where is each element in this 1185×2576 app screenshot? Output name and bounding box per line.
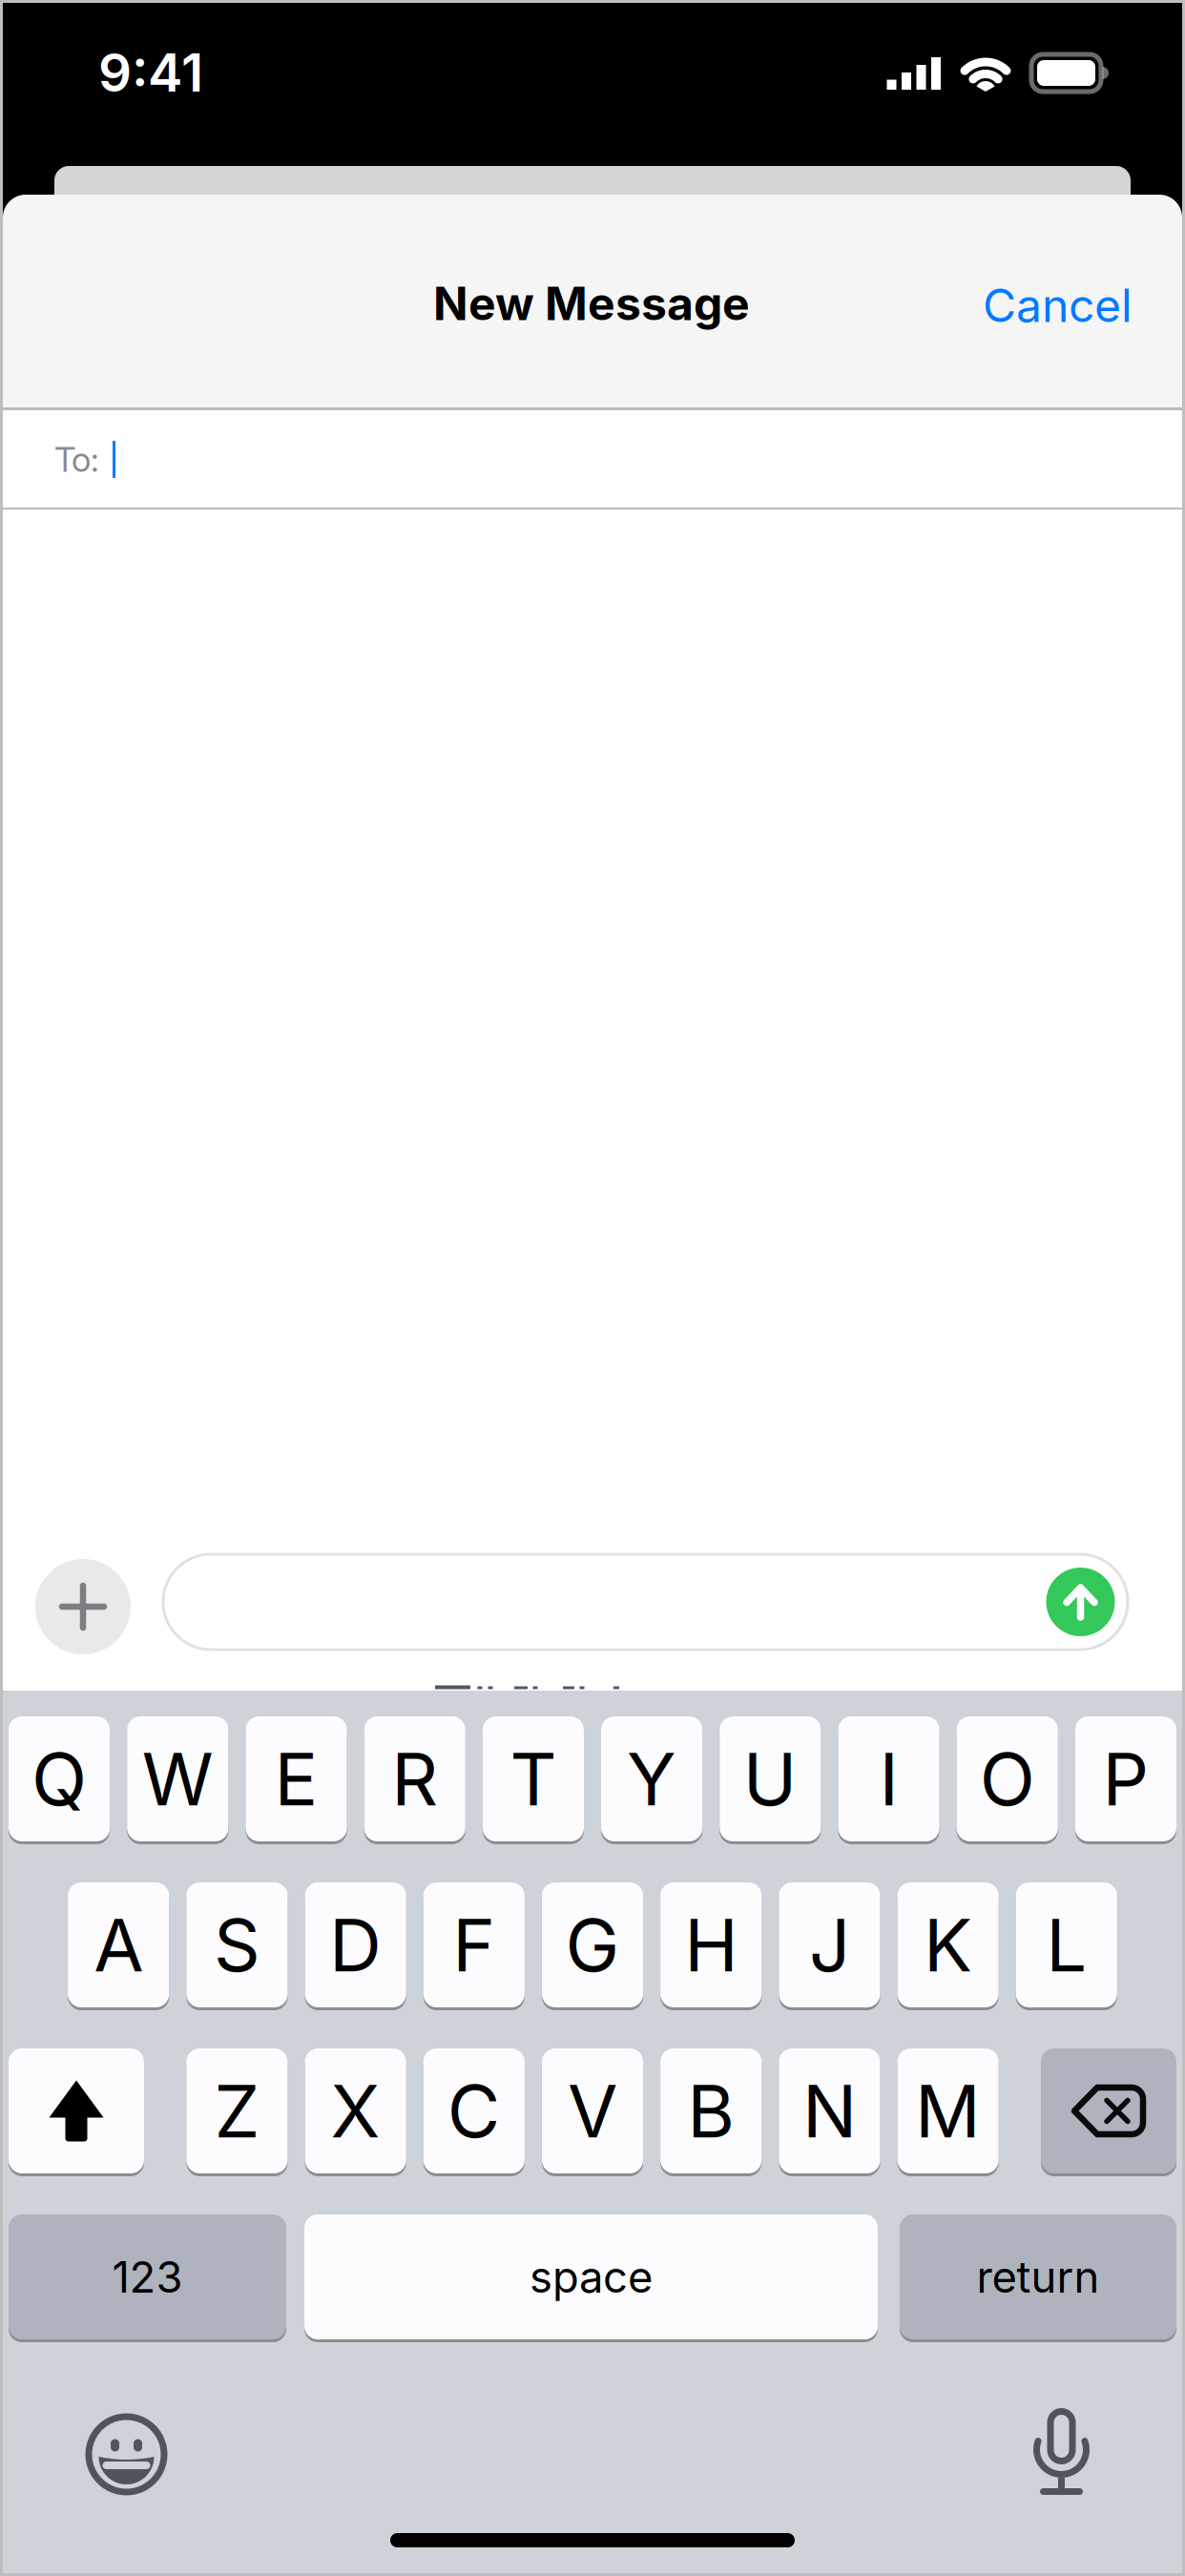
button[interactable]: J xyxy=(779,1881,880,2009)
button[interactable]: R xyxy=(364,1715,465,1843)
button[interactable]: G xyxy=(542,1881,643,2009)
button[interactable]: F xyxy=(423,1881,525,2009)
button[interactable] xyxy=(85,2413,168,2496)
button[interactable]: Q xyxy=(9,1715,110,1843)
button[interactable]: N xyxy=(779,2047,880,2175)
button[interactable]: To: xyxy=(3,411,1182,508)
button[interactable] xyxy=(1041,2047,1176,2175)
staticText: K xyxy=(924,1902,972,1988)
staticText: 9:41 xyxy=(98,42,203,103)
button[interactable]: O xyxy=(957,1715,1058,1843)
staticText: Y xyxy=(627,1736,677,1822)
staticText: M xyxy=(915,2068,981,2154)
button[interactable]: X xyxy=(305,2047,406,2175)
button[interactable]: V xyxy=(542,2047,643,2175)
button[interactable]: A xyxy=(68,1881,169,2009)
staticText: To: xyxy=(54,439,99,480)
button[interactable]: L xyxy=(1016,1881,1117,2009)
button[interactable]: I xyxy=(838,1715,939,1843)
staticText: B xyxy=(687,2068,735,2154)
button[interactable]: B xyxy=(660,2047,762,2175)
button[interactable] xyxy=(35,1559,131,1654)
button[interactable]: T xyxy=(483,1715,584,1843)
staticText: H xyxy=(684,1902,738,1988)
staticText: P xyxy=(1102,1736,1149,1822)
button[interactable] xyxy=(1033,2408,1090,2495)
staticText: Q xyxy=(32,1736,87,1822)
staticText: W xyxy=(142,1736,214,1822)
button[interactable] xyxy=(1046,1568,1115,1636)
staticText: X xyxy=(331,2068,380,2154)
button[interactable]: M xyxy=(897,2047,999,2175)
staticText: J xyxy=(809,1902,850,1988)
staticText: Cancel xyxy=(983,278,1133,332)
button[interactable]: D xyxy=(305,1881,406,2009)
staticText: space xyxy=(530,2251,653,2302)
button[interactable]: Cancel xyxy=(846,267,1133,343)
button[interactable]: Y xyxy=(601,1715,702,1843)
button[interactable]: S xyxy=(186,1881,288,2009)
staticText: N xyxy=(802,2068,857,2154)
staticText: S xyxy=(214,1902,260,1988)
staticText: F xyxy=(453,1902,495,1988)
staticText: D xyxy=(329,1902,382,1988)
button[interactable]: K xyxy=(897,1881,999,2009)
button[interactable] xyxy=(9,2047,144,2175)
button[interactable]: space xyxy=(304,2213,878,2341)
button[interactable]: 123 xyxy=(9,2213,286,2341)
staticText: R xyxy=(391,1736,438,1822)
staticText: return xyxy=(977,2251,1100,2302)
staticText: O xyxy=(980,1736,1035,1822)
staticText: V xyxy=(568,2068,617,2154)
staticText: G xyxy=(565,1902,620,1988)
staticText: U xyxy=(743,1736,797,1822)
button[interactable]: return xyxy=(900,2213,1176,2341)
button[interactable]: W xyxy=(127,1715,228,1843)
button[interactable]: U xyxy=(720,1715,821,1843)
staticText: T xyxy=(510,1736,557,1822)
button[interactable] xyxy=(163,1554,1128,1650)
button[interactable]: E xyxy=(246,1715,347,1843)
button[interactable]: H xyxy=(660,1881,762,2009)
staticText: C xyxy=(447,2068,501,2154)
button[interactable]: C xyxy=(423,2047,525,2175)
button[interactable]: Z xyxy=(186,2047,288,2175)
staticText: A xyxy=(94,1902,143,1988)
staticText: E xyxy=(274,1736,318,1822)
staticText: New Message xyxy=(433,276,750,330)
staticText: Z xyxy=(214,2068,260,2154)
staticText: 123 xyxy=(112,2251,183,2302)
button[interactable]: P xyxy=(1075,1715,1176,1843)
staticText: I xyxy=(879,1736,898,1822)
staticText: L xyxy=(1046,1902,1087,1988)
